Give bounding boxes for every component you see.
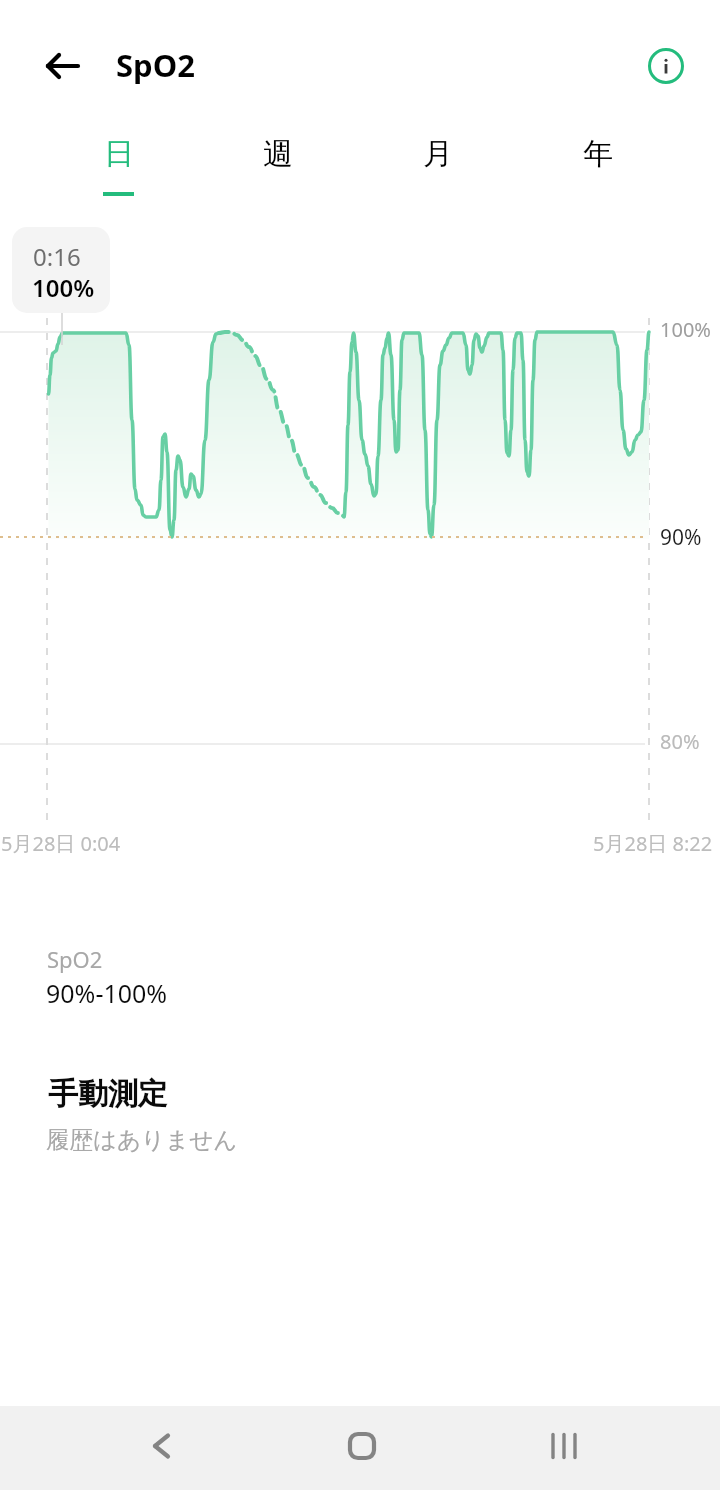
staticText: 0:16 bbox=[33, 240, 81, 273]
button[interactable]: Information bbox=[638, 38, 694, 94]
staticText: 90% bbox=[660, 523, 702, 552]
staticText: 90%-100% bbox=[46, 976, 168, 1010]
staticText: 年 bbox=[583, 135, 613, 173]
button[interactable]: Back bbox=[101, 1406, 221, 1490]
button[interactable]: 月 bbox=[358, 132, 518, 228]
button[interactable]: 年 bbox=[518, 132, 678, 228]
staticText: 月 bbox=[423, 135, 453, 173]
staticText: 5月28日 0:04 bbox=[1, 830, 121, 857]
staticText: SpO2 bbox=[116, 44, 195, 86]
staticText: 日 bbox=[104, 135, 134, 173]
staticText: 5月28日 8:22 bbox=[593, 830, 713, 857]
button[interactable]: Home bbox=[302, 1406, 422, 1490]
button[interactable]: Back bbox=[30, 33, 96, 99]
button[interactable]: 日 bbox=[38, 132, 198, 228]
staticText: 100% bbox=[32, 271, 95, 304]
staticText: 履歴はありません bbox=[46, 1125, 238, 1155]
staticText: 100% bbox=[660, 316, 711, 343]
staticText: 週 bbox=[263, 135, 293, 173]
staticText: 80% bbox=[660, 728, 700, 755]
staticText: SpO2 bbox=[47, 944, 103, 974]
button[interactable]: 週 bbox=[198, 132, 358, 228]
staticText: 手動測定 bbox=[48, 1075, 168, 1113]
button[interactable]: Recent apps bbox=[504, 1406, 624, 1490]
